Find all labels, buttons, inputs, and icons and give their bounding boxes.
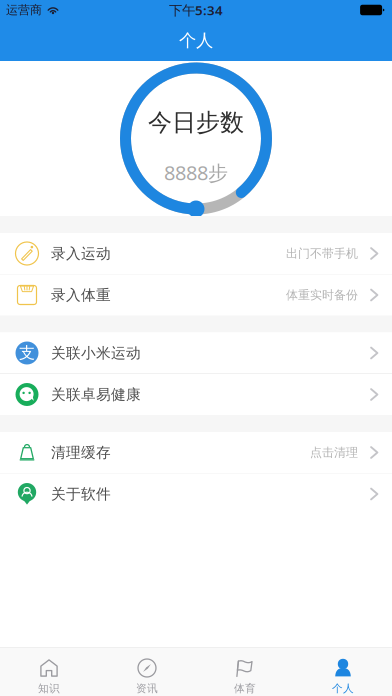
button[interactable]: 录入体重 xyxy=(0,274,392,315)
button[interactable]: 录入运动 xyxy=(0,233,392,274)
staticText: 资讯 xyxy=(136,682,158,695)
staticText: 关于软件 xyxy=(51,485,111,503)
staticText: 关联卓易健康 xyxy=(51,385,141,403)
button[interactable]: 关联卓易健康 xyxy=(0,374,392,415)
staticText: 关联小米运动 xyxy=(51,344,141,362)
staticText: 下午5:34 xyxy=(169,1,223,19)
staticText: 8888步 xyxy=(164,159,228,186)
staticText: 录入运动 xyxy=(51,244,111,262)
staticText: 出门不带手机 xyxy=(286,246,358,261)
staticText: 清理缓存 xyxy=(51,443,111,461)
button[interactable]: 关于软件 xyxy=(0,473,392,514)
staticText: 知识 xyxy=(38,682,60,695)
button[interactable]: 个人 xyxy=(294,648,392,696)
staticText: 个人 xyxy=(179,30,213,51)
staticText: 录入体重 xyxy=(51,286,111,304)
staticText: 点击清理 xyxy=(310,445,358,460)
staticText: 运营商 xyxy=(6,3,42,17)
staticText: 支 xyxy=(19,343,35,363)
staticText: 个人 xyxy=(332,682,354,695)
button[interactable]: 体育 xyxy=(196,648,294,696)
button[interactable]: 知识 xyxy=(0,648,98,696)
staticText: 今日步数 xyxy=(148,108,244,137)
button[interactable]: 资讯 xyxy=(98,648,196,696)
button[interactable]: 支 xyxy=(0,332,392,373)
button[interactable]: 清理缓存 xyxy=(0,432,392,473)
staticText: 体育 xyxy=(234,682,256,695)
staticText: 体重实时备份 xyxy=(286,288,358,302)
